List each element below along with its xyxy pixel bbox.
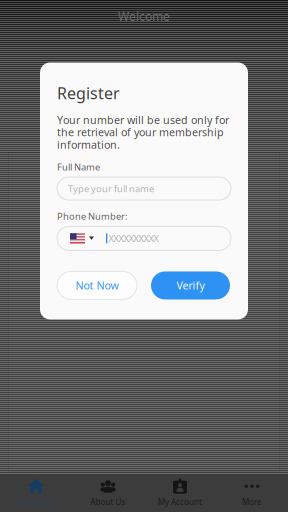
staticText: XXXXXXXXXX	[108, 232, 158, 245]
button[interactable]: About Us	[72, 473, 144, 512]
staticText: My Account	[158, 497, 202, 507]
staticText: Welcome	[18, 497, 53, 507]
button[interactable]: Welcome	[0, 473, 72, 512]
staticText: Full Name	[57, 161, 100, 173]
staticText: Welcome	[118, 8, 170, 24]
staticText: About Us	[90, 497, 125, 507]
button[interactable]: Not Now	[57, 271, 137, 299]
staticText: Type your full name	[68, 182, 154, 195]
button[interactable]: Verify	[151, 271, 230, 299]
button[interactable]: More	[216, 473, 288, 512]
button[interactable]: My Account	[144, 473, 216, 512]
staticText: Verify	[176, 278, 204, 293]
staticText: Not Now	[75, 278, 118, 293]
staticText: Phone Number:	[57, 210, 128, 222]
staticText: Register	[57, 82, 120, 104]
staticText: More	[242, 497, 262, 507]
staticText: Your number will be used only for the re…	[57, 113, 229, 152]
